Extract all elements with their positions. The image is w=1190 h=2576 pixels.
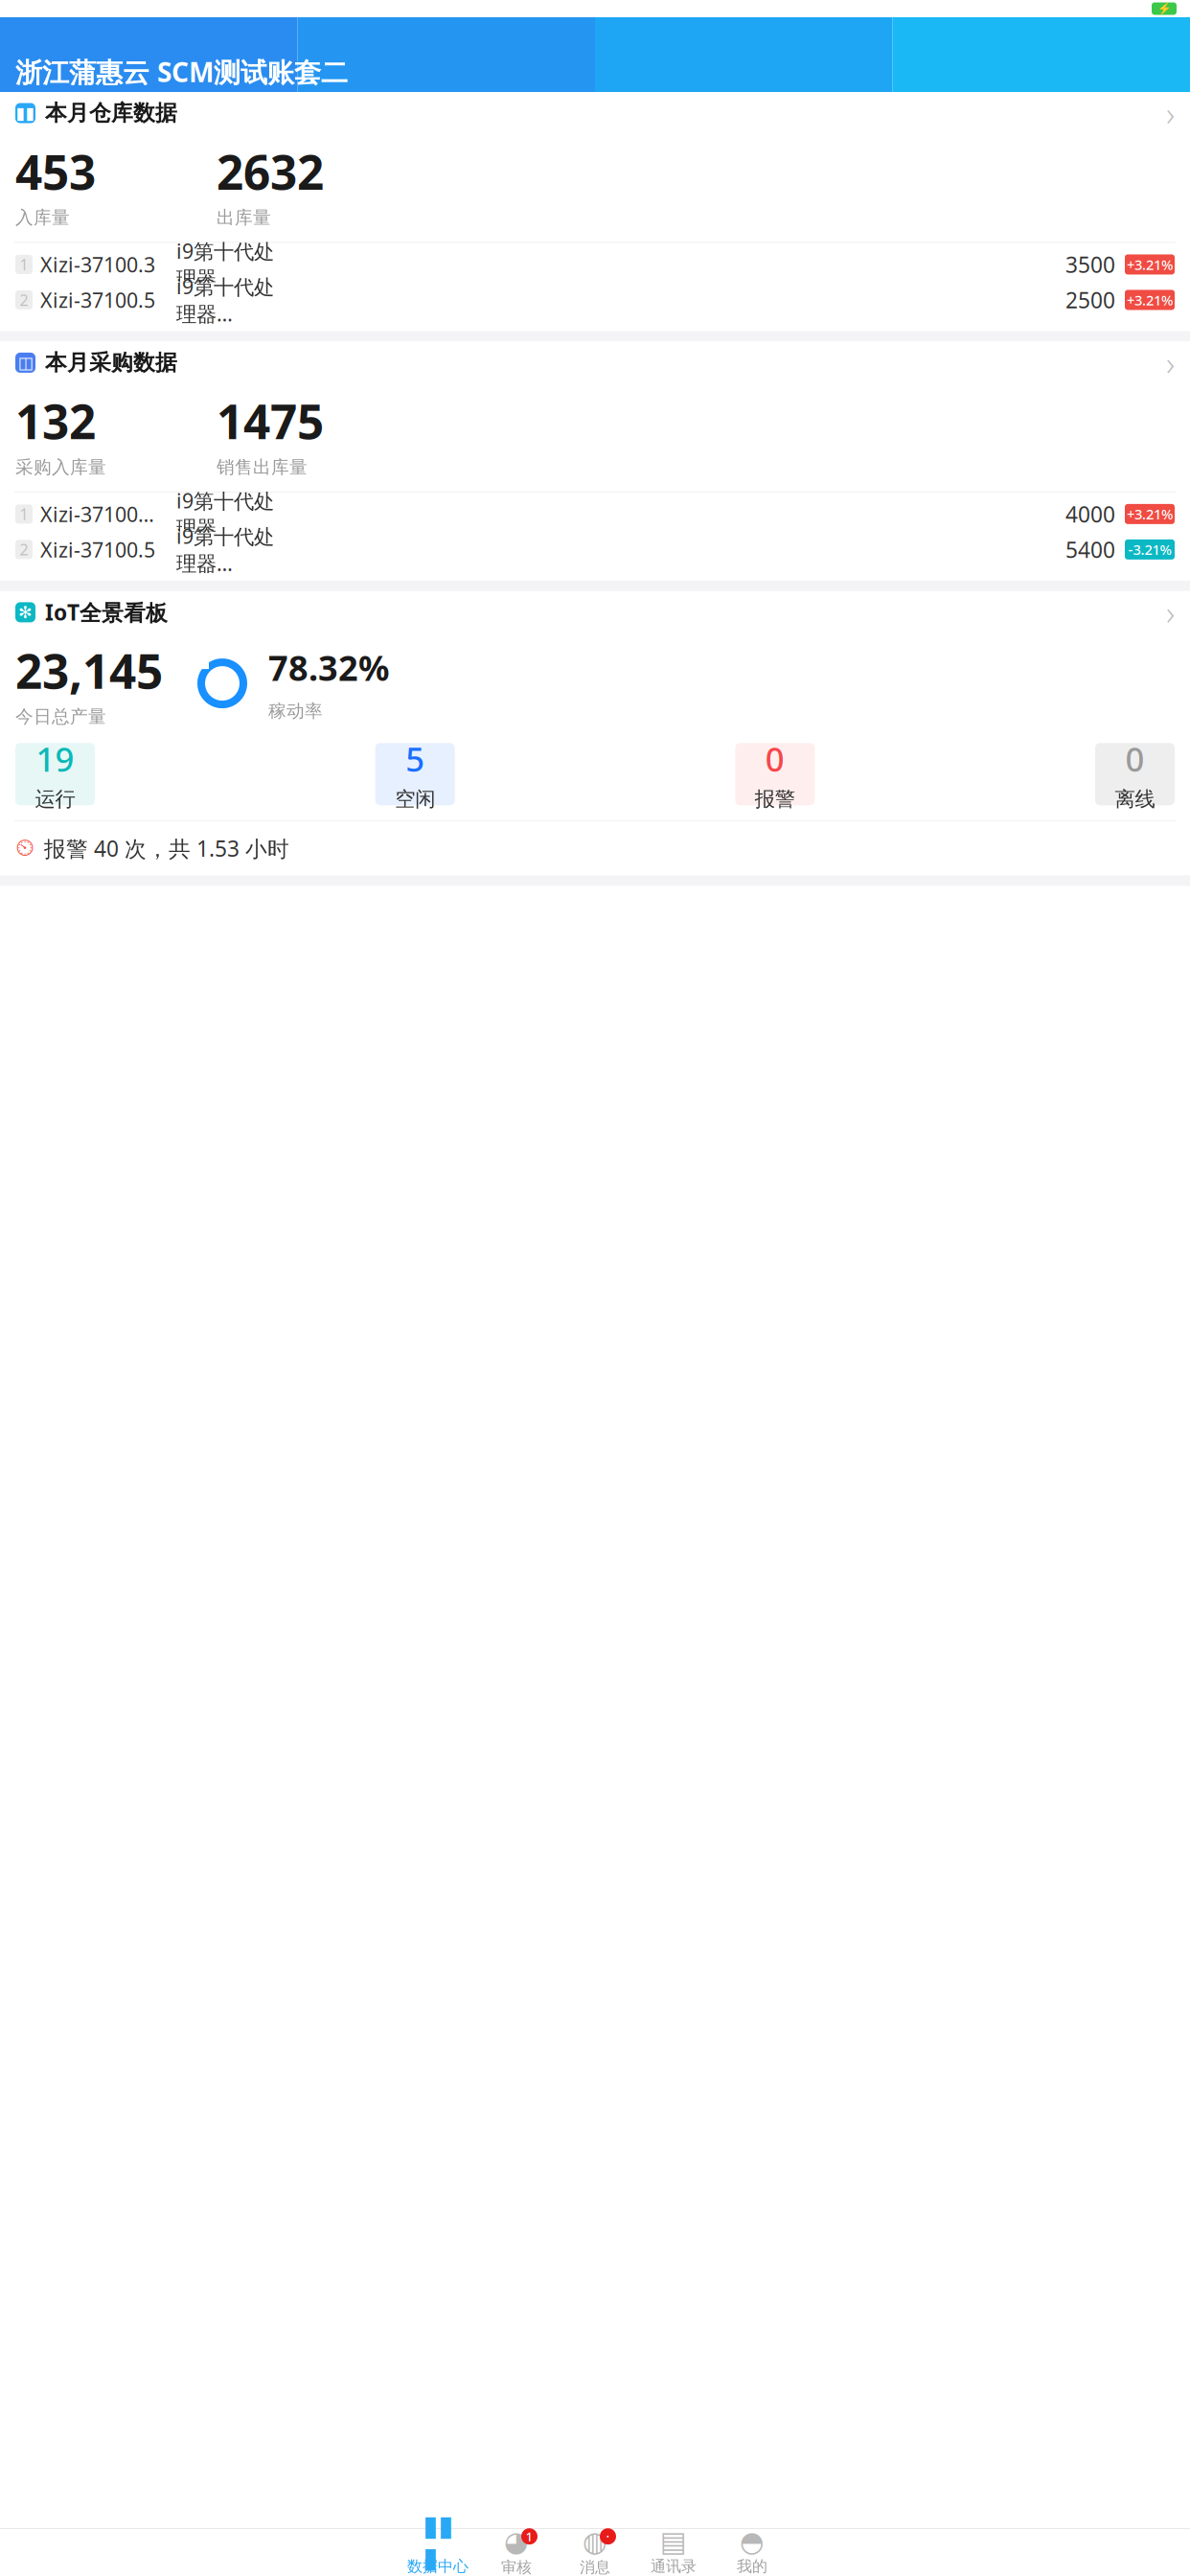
staticText: 今日总产量 — [15, 706, 106, 728]
staticText: 1 — [20, 504, 28, 524]
staticText: ▤ — [660, 2526, 687, 2558]
staticText: +3.21% — [1127, 505, 1173, 523]
staticText: 离线 — [1115, 787, 1155, 812]
staticText: 消息 — [580, 2558, 610, 2576]
button[interactable]: ▮▮▮ — [399, 2529, 477, 2576]
staticText: ◓ — [740, 2526, 765, 2558]
staticText: ✻ — [18, 603, 33, 622]
button[interactable]: ◕ — [477, 2529, 556, 2576]
staticText: ◫ — [18, 353, 33, 372]
button[interactable]: ✻ — [0, 591, 1190, 633]
staticText: Xizi-37100… — [40, 500, 154, 528]
staticText: 我的 — [737, 2557, 767, 2576]
staticText: 0 — [1125, 737, 1144, 781]
staticText: 0 — [765, 737, 785, 781]
staticText: › — [1166, 590, 1175, 634]
staticText: 2 — [20, 539, 28, 560]
staticText: 报警 40 次，共 1.53 小时 — [44, 834, 289, 863]
button[interactable]: 5 — [375, 743, 455, 805]
button[interactable]: 0 — [735, 743, 815, 805]
staticText: 453 — [15, 140, 96, 203]
staticText: 空闲 — [395, 787, 435, 812]
staticText: 本月仓库数据 — [45, 100, 177, 126]
staticText: 入库量 — [15, 207, 70, 228]
staticText: Xizi-37100.5 — [40, 536, 155, 563]
staticText: 数据中心 — [407, 2557, 469, 2576]
staticText: Xizi-37100.5 — [40, 286, 155, 313]
staticText: 5400 — [1065, 535, 1115, 564]
staticText: +3.21% — [1127, 291, 1173, 309]
staticText: 2500 — [1065, 285, 1115, 314]
staticText: 通讯录 — [651, 2557, 697, 2576]
button[interactable]: ◓ — [713, 2529, 791, 2576]
button[interactable]: ▮▮ — [0, 92, 1190, 134]
staticText: 本月采购数据 — [45, 349, 177, 376]
staticText: 5 — [405, 737, 425, 781]
staticText: · — [606, 2528, 610, 2545]
staticText: 浙江蒲惠云 SCM测试账套二 — [15, 54, 348, 90]
staticText: 运行 — [35, 787, 75, 812]
staticText: 审核 — [501, 2558, 532, 2576]
button[interactable]: 0 — [1095, 743, 1175, 805]
staticText: 23,145 — [15, 639, 163, 702]
staticText: › — [1166, 91, 1175, 135]
staticText: › — [1166, 341, 1175, 385]
staticText: 3500 — [1065, 250, 1115, 279]
staticText: 1 — [20, 254, 28, 275]
staticText: 采购入库量 — [15, 456, 106, 478]
staticText: 1 — [526, 2528, 533, 2545]
staticText: 销售出库量 — [217, 456, 308, 478]
staticText: 1475 — [217, 389, 324, 452]
staticText: ◍ — [583, 2526, 607, 2558]
staticText: 2 — [20, 290, 28, 310]
staticText: 78.32% — [268, 645, 389, 690]
staticText: i9第十代处理器… — [176, 273, 274, 327]
staticText: i9第十代处理器… — [176, 522, 274, 577]
staticText: ▮▮▮ — [423, 2510, 453, 2574]
staticText: ◕ — [504, 2526, 529, 2558]
staticText: ▮▮ — [16, 104, 35, 123]
button[interactable]: 19 — [15, 743, 95, 805]
staticText: -3.21% — [1128, 540, 1171, 559]
staticText: 出库量 — [217, 207, 271, 228]
staticText: ⏲ — [15, 837, 34, 860]
staticText: ⚡ — [1157, 2, 1171, 15]
button[interactable]: ◍ — [556, 2529, 634, 2576]
button[interactable]: ▤ — [634, 2529, 713, 2576]
staticText: IoT全景看板 — [45, 598, 168, 627]
staticText: 19 — [36, 737, 74, 781]
staticText: 4000 — [1065, 500, 1115, 528]
staticText: i9第十代处理器… — [176, 237, 274, 292]
button[interactable]: ◫ — [0, 342, 1190, 384]
staticText: +3.21% — [1127, 255, 1173, 274]
staticText: 2632 — [217, 140, 324, 203]
staticText: 报警 — [755, 787, 795, 812]
staticText: Xizi-37100.3 — [40, 251, 155, 278]
staticText: 稼动率 — [268, 700, 323, 722]
staticText: 132 — [15, 389, 96, 452]
staticText: i9第十代处理器… — [176, 487, 274, 541]
